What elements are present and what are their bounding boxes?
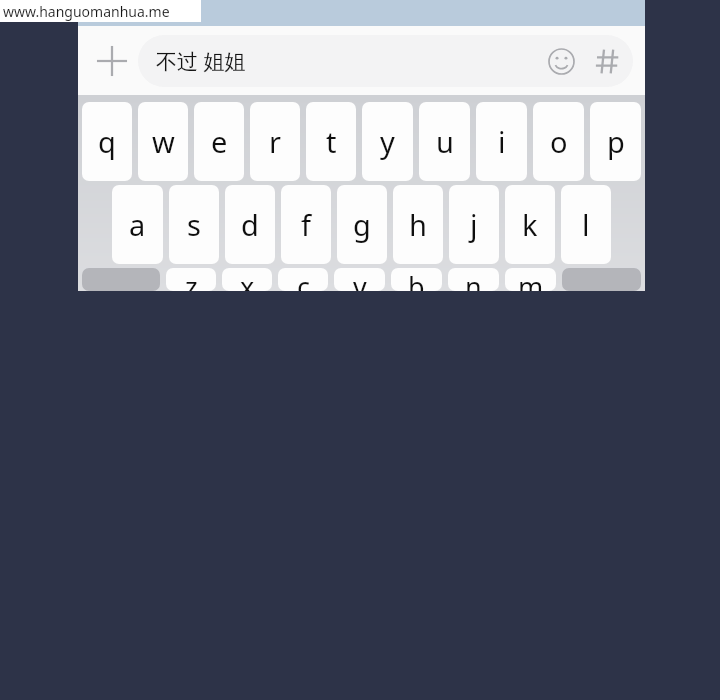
staticText: e — [211, 122, 228, 161]
button[interactable]: p — [590, 102, 641, 181]
button[interactable]: k — [505, 185, 555, 264]
staticText: h — [409, 205, 427, 244]
button[interactable]: c — [278, 268, 328, 291]
button[interactable]: e — [194, 102, 244, 181]
button[interactable]: b — [391, 268, 442, 291]
staticText: g — [353, 205, 371, 244]
button[interactable]: Hashtag — [583, 37, 631, 85]
staticText: www.hanguomanhua.me — [3, 2, 170, 21]
staticText: f — [301, 205, 311, 244]
staticText: l — [582, 205, 590, 244]
button[interactable]: h — [393, 185, 443, 264]
staticText: w — [152, 122, 175, 161]
staticText: b — [408, 268, 425, 291]
button[interactable]: s — [169, 185, 219, 264]
button[interactable]: x — [222, 268, 272, 291]
button[interactable]: q — [82, 102, 132, 181]
button[interactable]: z — [166, 268, 216, 291]
staticText: z — [185, 268, 198, 291]
button[interactable]: n — [448, 268, 499, 291]
staticText: k — [522, 205, 538, 244]
staticText: m — [518, 268, 544, 291]
staticText: n — [465, 268, 482, 291]
button[interactable]: l — [561, 185, 611, 264]
staticText: j — [470, 205, 478, 244]
button[interactable]: Add attachment — [88, 37, 136, 85]
button[interactable]: i — [476, 102, 527, 181]
button[interactable]: r — [250, 102, 300, 181]
staticText: u — [436, 122, 454, 161]
staticText: d — [241, 205, 259, 244]
button[interactable]: 不过 姐姐 — [138, 35, 633, 87]
button[interactable]: a — [112, 185, 163, 264]
button[interactable]: w — [138, 102, 188, 181]
staticText: p — [607, 122, 625, 161]
staticText: o — [550, 122, 568, 161]
staticText: y — [380, 122, 395, 161]
button[interactable]: Shift — [82, 268, 160, 291]
button[interactable]: j — [449, 185, 499, 264]
staticText: v — [353, 268, 367, 291]
button[interactable]: u — [419, 102, 470, 181]
button[interactable]: Emoji — [539, 39, 583, 83]
button[interactable]: t — [306, 102, 356, 181]
button[interactable]: y — [362, 102, 413, 181]
button[interactable]: v — [334, 268, 385, 291]
staticText: r — [269, 122, 281, 161]
button[interactable]: g — [337, 185, 387, 264]
button[interactable]: f — [281, 185, 331, 264]
staticText: s — [187, 205, 201, 244]
staticText: q — [98, 122, 116, 161]
staticText: i — [498, 122, 506, 161]
staticText: t — [326, 122, 337, 161]
staticText: x — [240, 268, 255, 291]
button[interactable]: d — [225, 185, 275, 264]
button[interactable]: m — [505, 268, 556, 291]
button[interactable]: o — [533, 102, 584, 181]
staticText: c — [297, 268, 310, 291]
staticText: a — [129, 205, 146, 244]
button[interactable]: Backspace — [562, 268, 641, 291]
staticText: 不过 姐姐 — [156, 47, 246, 76]
